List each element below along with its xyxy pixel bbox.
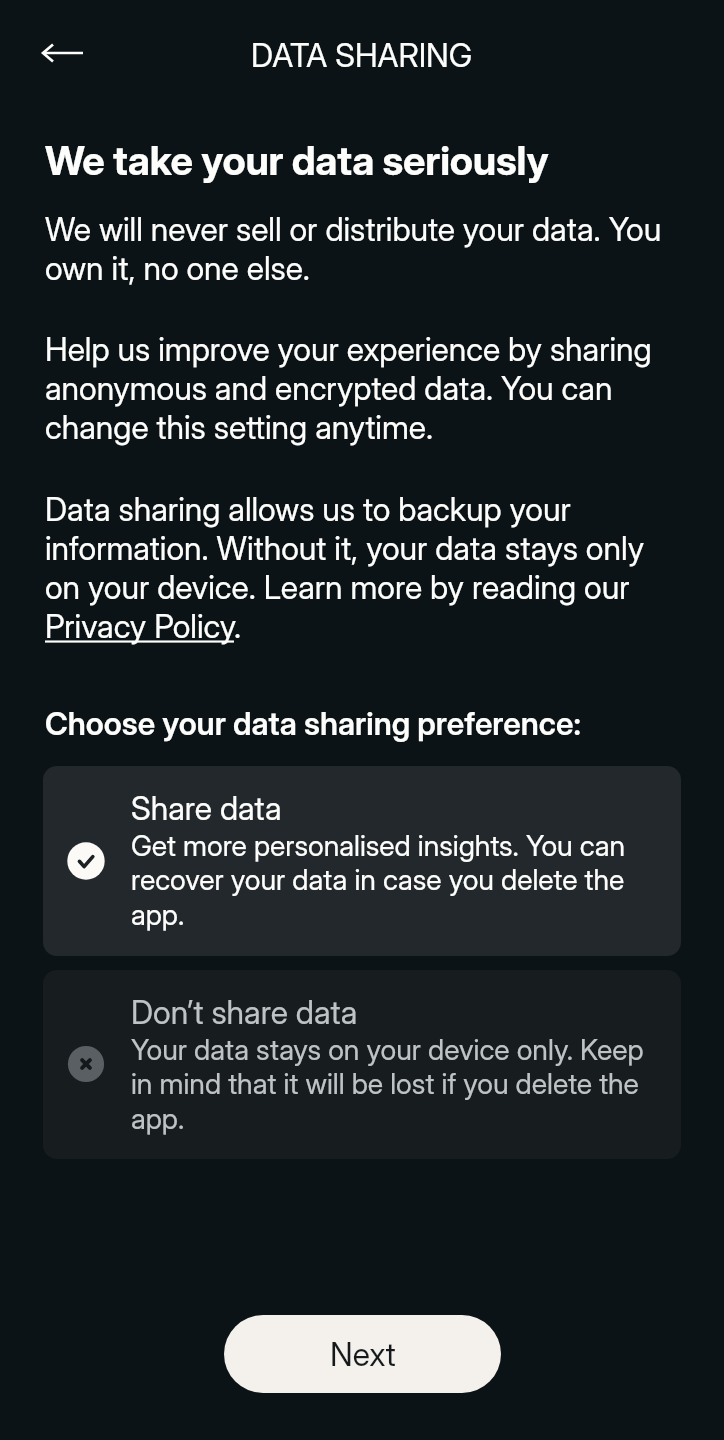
button[interactable]: Next	[224, 1315, 501, 1393]
staticText: We take your data seriously	[45, 136, 549, 184]
staticText: Data sharing allows us to backup your in…	[45, 490, 685, 646]
staticText: Don’t share data	[131, 993, 358, 1032]
staticText: Help us improve your experience by shari…	[45, 330, 685, 447]
staticText: Choose your data sharing preference:	[45, 704, 581, 742]
staticText: Share data	[131, 789, 282, 828]
button[interactable]: Share data	[43, 766, 681, 956]
button[interactable]: Don’t share data	[43, 970, 681, 1159]
staticText: Your data stays on your device only. Kee…	[131, 1032, 659, 1135]
staticText: We will never sell or distribute your da…	[45, 210, 685, 288]
staticText: DATA SHARING	[251, 36, 473, 75]
staticText: Get more personalised insights. You can …	[131, 828, 659, 931]
staticText: Next	[330, 1335, 396, 1374]
button[interactable]: Back	[39, 29, 87, 77]
